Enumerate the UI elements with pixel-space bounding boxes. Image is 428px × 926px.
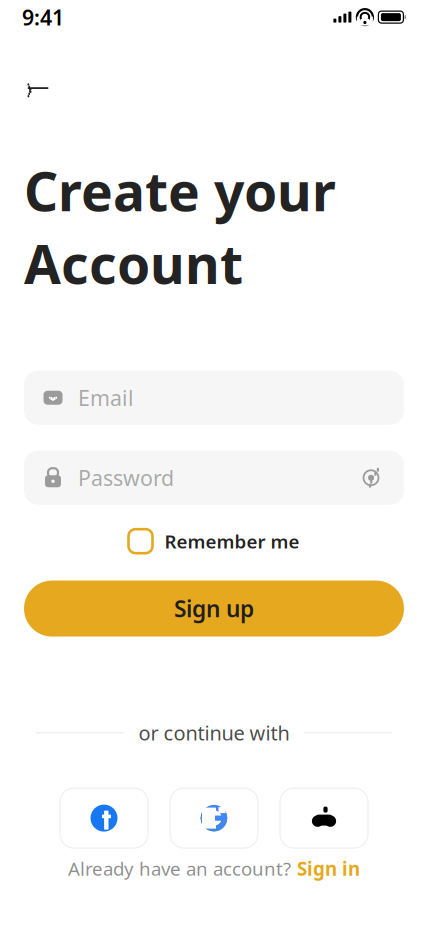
staticText: Email [78,384,134,412]
button[interactable]: Show password [356,463,386,493]
button[interactable]: Continue with Google [170,788,258,848]
staticText: or continue with [138,719,289,746]
staticText: Already have an account? [68,856,291,881]
button[interactable]: Continue with Facebook [60,788,148,848]
staticText: Sign in [297,856,360,881]
button[interactable]: Sign up [24,580,404,636]
button[interactable]: Continue with Apple [280,788,368,848]
staticText: Sign up [174,593,254,624]
button[interactable]: Back [16,69,60,107]
staticText: 9:41 [22,3,64,31]
staticText: Account [24,228,243,299]
staticText: Create your [24,155,336,226]
button[interactable]: Sign in [297,856,360,881]
staticText: Password [78,464,174,492]
button[interactable]: Remember me [128,523,299,560]
staticText: Remember me [164,529,299,554]
